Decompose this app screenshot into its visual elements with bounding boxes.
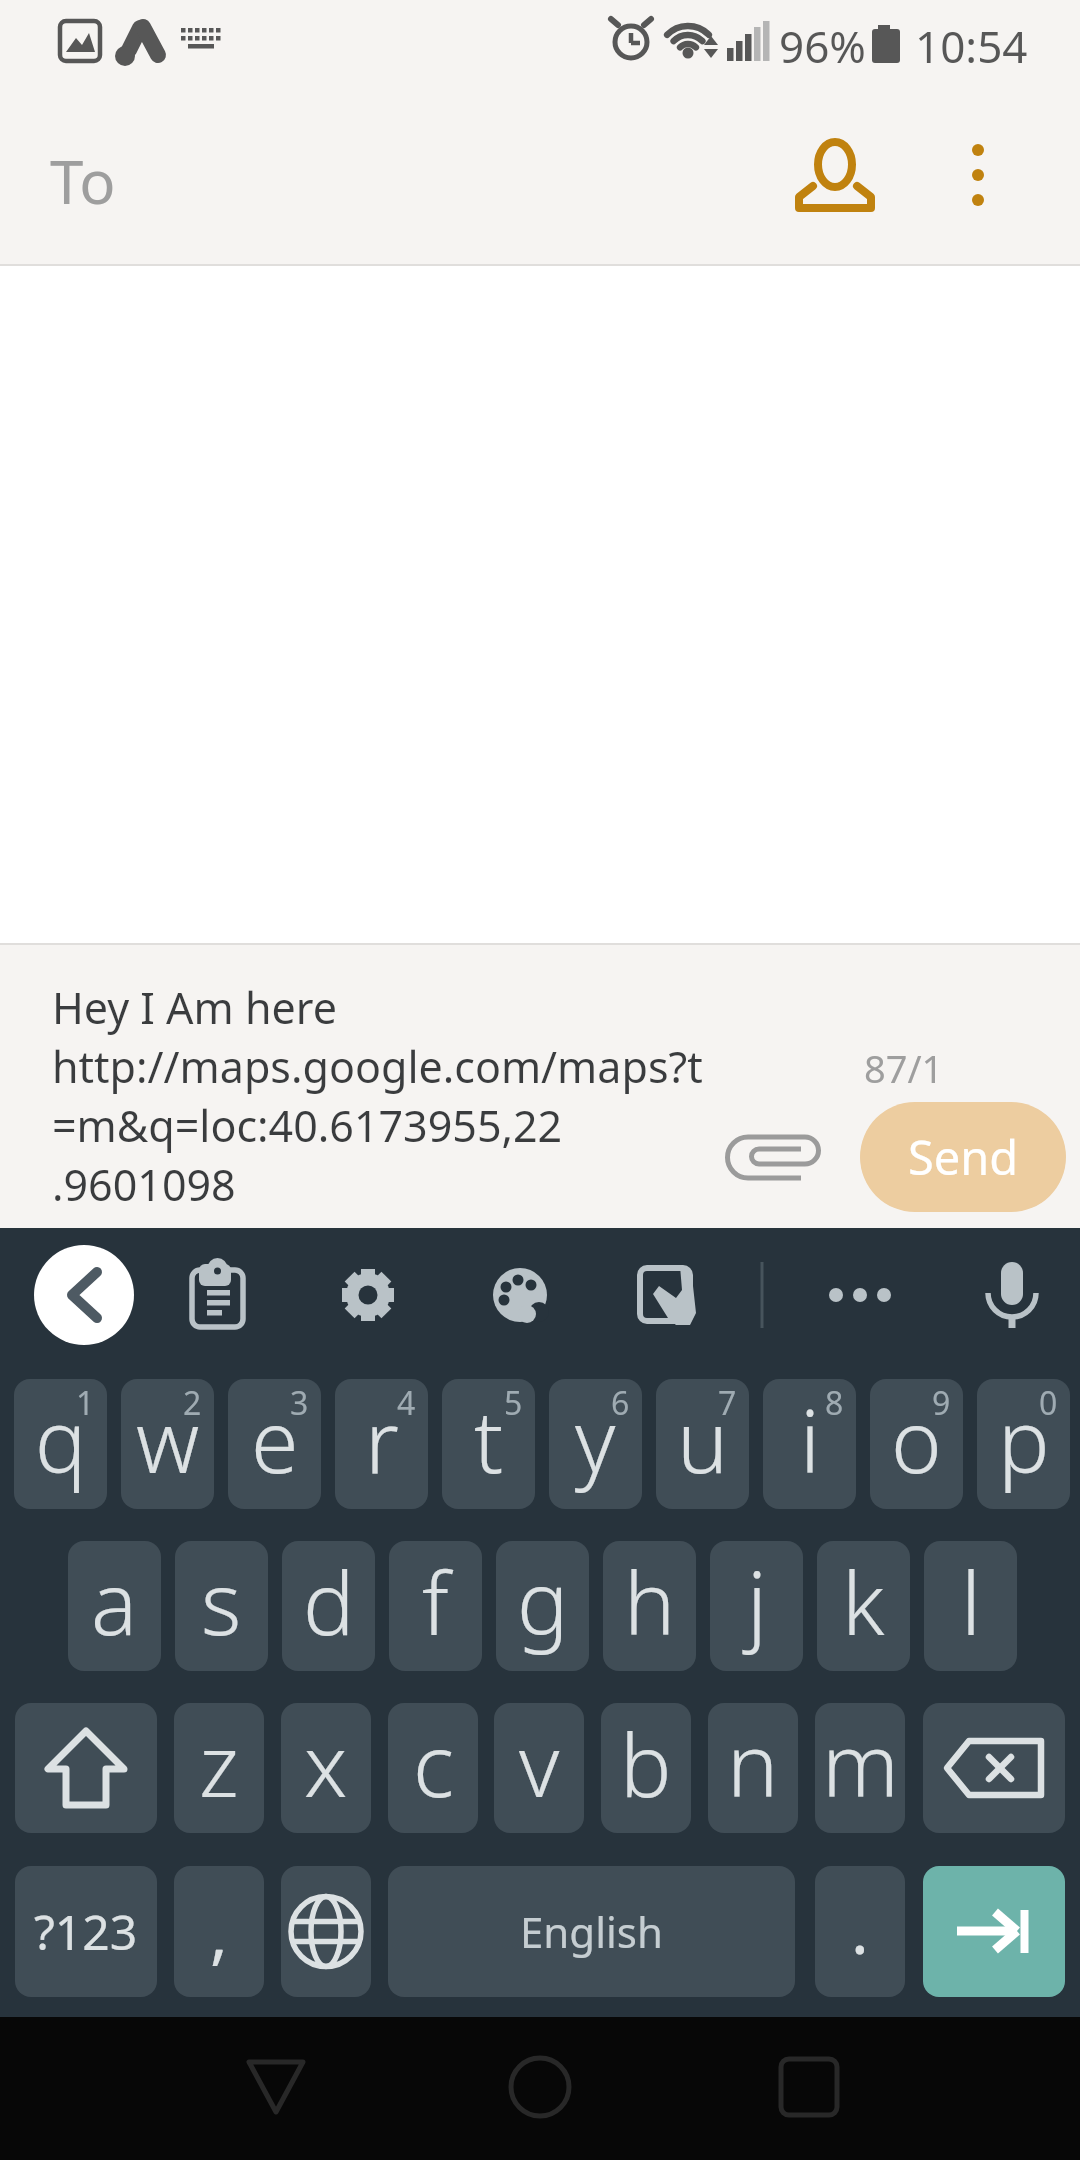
button[interactable] [195, 2020, 355, 2158]
staticText: 2 [183, 1381, 202, 1425]
staticText: i [800, 1381, 820, 1498]
staticText: . [851, 1883, 869, 1973]
button[interactable]: p [977, 1379, 1070, 1509]
staticText: 1 [76, 1381, 95, 1425]
button[interactable]: c [388, 1703, 478, 1833]
button[interactable] [15, 1703, 157, 1833]
staticText: 8 [825, 1381, 844, 1425]
staticText: 3 [290, 1381, 309, 1425]
button[interactable] [928, 115, 1028, 235]
button[interactable]: ?123 [15, 1866, 157, 1997]
staticText: v [519, 1705, 560, 1822]
button[interactable] [460, 2020, 620, 2158]
button[interactable]: i [763, 1379, 856, 1509]
staticText: q [35, 1381, 87, 1498]
button[interactable]: r [335, 1379, 428, 1509]
button[interactable]: b [601, 1703, 691, 1833]
button[interactable]: g [496, 1541, 589, 1671]
staticText: z [199, 1705, 239, 1822]
staticText: g [517, 1543, 569, 1660]
button[interactable]: o [870, 1379, 963, 1509]
staticText: f [422, 1543, 449, 1660]
staticText: k [842, 1543, 885, 1660]
button[interactable] [775, 115, 895, 235]
staticText: 4 [397, 1381, 416, 1425]
staticText: English [520, 1903, 663, 1960]
button[interactable]: f [389, 1541, 482, 1671]
staticText: 5 [504, 1381, 523, 1425]
staticText: To [50, 140, 116, 222]
button[interactable] [923, 1703, 1065, 1833]
staticText: , [210, 1887, 228, 1977]
button[interactable]: w [121, 1379, 214, 1509]
button[interactable]: q [14, 1379, 107, 1509]
staticText: a [91, 1543, 138, 1660]
staticText: m [822, 1705, 899, 1822]
staticText: w [136, 1381, 200, 1498]
staticText: d [303, 1543, 355, 1660]
button[interactable]: l [924, 1541, 1017, 1671]
button[interactable]: . [815, 1866, 905, 1997]
staticText: y [575, 1381, 616, 1498]
staticText: o [891, 1381, 942, 1498]
staticText: 7 [718, 1381, 737, 1425]
staticText: r [365, 1381, 399, 1498]
button[interactable]: t [442, 1379, 535, 1509]
button[interactable] [281, 1866, 371, 1997]
button[interactable]: k [817, 1541, 910, 1671]
staticText: j [747, 1543, 767, 1660]
button[interactable]: y [549, 1379, 642, 1509]
staticText: 0 [1039, 1381, 1058, 1425]
button[interactable]: x [281, 1703, 371, 1833]
staticText: n [727, 1705, 779, 1822]
button[interactable]: m [815, 1703, 905, 1833]
button[interactable]: e [228, 1379, 321, 1509]
button[interactable]: u [656, 1379, 749, 1509]
staticText: t [474, 1381, 504, 1498]
staticText: 6 [611, 1381, 630, 1425]
staticText: Hey I Am here http://maps.google.com/map… [52, 978, 703, 1214]
staticText: x [304, 1705, 348, 1822]
button[interactable] [728, 2020, 888, 2158]
staticText: c [413, 1705, 454, 1822]
staticText: p [998, 1381, 1050, 1498]
staticText: h [624, 1543, 676, 1660]
staticText: s [201, 1543, 242, 1660]
button[interactable]: s [175, 1541, 268, 1671]
staticText: b [620, 1705, 672, 1822]
button[interactable] [34, 1245, 134, 1345]
button[interactable]: z [174, 1703, 264, 1833]
button[interactable]: j [710, 1541, 803, 1671]
staticText: Send [908, 1125, 1019, 1189]
staticText: l [961, 1543, 981, 1660]
button[interactable]: , [174, 1866, 264, 1997]
staticText: 87/1 [864, 1042, 944, 1094]
staticText: u [677, 1381, 729, 1498]
staticText: 10:54 [915, 16, 1028, 76]
button[interactable]: v [494, 1703, 584, 1833]
button[interactable]: Send [860, 1102, 1066, 1212]
staticText: 9 [932, 1381, 951, 1425]
button[interactable] [923, 1866, 1065, 1997]
button[interactable]: d [282, 1541, 375, 1671]
staticText: 96% [779, 16, 866, 76]
staticText: ?123 [34, 1899, 138, 1964]
button[interactable]: h [603, 1541, 696, 1671]
button[interactable]: n [708, 1703, 798, 1833]
staticText: e [251, 1381, 299, 1498]
button[interactable]: English [388, 1866, 795, 1997]
button[interactable]: a [68, 1541, 161, 1671]
